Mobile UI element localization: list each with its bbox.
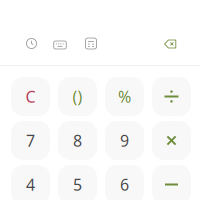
staticText: 8: [73, 130, 82, 151]
button[interactable]: 5: [58, 165, 97, 200]
button[interactable]: %: [105, 77, 144, 116]
staticText: 5: [73, 174, 82, 195]
button[interactable]: C: [11, 77, 50, 116]
staticText: 6: [120, 174, 129, 195]
staticText: 9: [120, 130, 129, 151]
button[interactable]: Recents: [25, 37, 37, 49]
button[interactable]: 8: [58, 121, 97, 160]
button[interactable]: Keyboard: [53, 39, 66, 51]
button[interactable]: (): [58, 77, 97, 116]
button[interactable]: 6: [105, 165, 144, 200]
staticText: (): [72, 86, 82, 107]
staticText: 4: [26, 174, 35, 195]
button[interactable]: 4: [11, 165, 50, 200]
button[interactable]: Calculator: [85, 37, 97, 49]
staticText: %: [118, 86, 131, 107]
button[interactable]: Minus: [152, 165, 191, 200]
staticText: 7: [26, 130, 35, 151]
button[interactable]: Divide: [152, 77, 191, 116]
button[interactable]: 9: [105, 121, 144, 160]
button[interactable]: 7: [11, 121, 50, 160]
button[interactable]: Multiply: [152, 121, 191, 160]
button[interactable]: Delete: [164, 38, 177, 50]
staticText: C: [25, 86, 35, 107]
